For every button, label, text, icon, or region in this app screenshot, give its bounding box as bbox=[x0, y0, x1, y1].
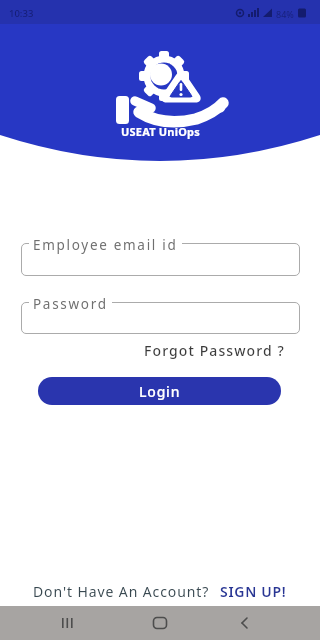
button[interactable] bbox=[232, 611, 256, 635]
button[interactable]: Login bbox=[38, 377, 281, 405]
button[interactable] bbox=[21, 302, 300, 334]
staticText: 10:33 bbox=[9, 7, 34, 20]
button[interactable] bbox=[55, 611, 79, 635]
staticText: Password bbox=[33, 295, 108, 313]
staticText: USEAT UniOps bbox=[121, 124, 200, 139]
staticText: Login bbox=[139, 382, 181, 401]
button[interactable]: Forgot Password ? bbox=[144, 341, 285, 360]
staticText: 84% bbox=[276, 8, 294, 20]
button[interactable]: SIGN UP! bbox=[220, 582, 287, 601]
staticText: SIGN UP! bbox=[220, 582, 287, 601]
staticText: Forgot Password ? bbox=[144, 341, 285, 360]
button[interactable] bbox=[148, 611, 172, 635]
staticText: Employee email id bbox=[33, 236, 178, 254]
staticText: Don't Have An Account? bbox=[33, 582, 210, 601]
button[interactable] bbox=[21, 243, 300, 276]
